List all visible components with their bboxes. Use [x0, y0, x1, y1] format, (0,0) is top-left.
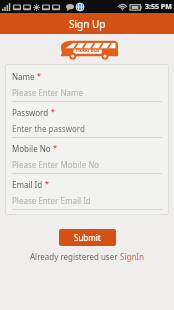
button[interactable]: Submit — [59, 229, 116, 246]
staticText: SignIn — [120, 251, 144, 262]
staticText: Please Enter Mobile No — [12, 159, 100, 170]
button[interactable]: Email Id — [12, 174, 162, 210]
staticText: Email Id — [12, 179, 43, 190]
staticText: 3:55 PM — [145, 2, 172, 12]
staticText: * — [53, 143, 57, 153]
staticText: Already registered user — [30, 251, 120, 262]
staticText: Sign Up — [69, 17, 106, 31]
staticText: Submit — [74, 232, 101, 243]
staticText: Please Enter Name — [12, 87, 84, 98]
staticText: Hobo Bus — [76, 47, 100, 54]
staticText: Name — [12, 71, 35, 82]
button[interactable]: Password — [12, 102, 162, 138]
staticText: Please Enter Email Id — [12, 195, 91, 206]
button[interactable]: SignIn — [120, 251, 144, 262]
staticText: * — [45, 179, 49, 189]
staticText: Password — [12, 107, 49, 118]
staticText: Enter the password — [12, 123, 85, 134]
button[interactable]: Mobile No — [12, 138, 162, 174]
staticText: Mobile No — [12, 143, 51, 154]
staticText: * — [51, 107, 55, 117]
button[interactable]: Name — [12, 66, 162, 102]
staticText: * — [37, 71, 41, 81]
